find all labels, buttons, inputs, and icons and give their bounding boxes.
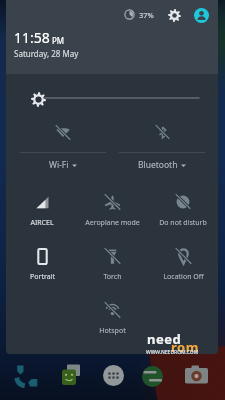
button[interactable]: Location Off [148, 245, 218, 291]
staticText: Bluetooth [138, 159, 178, 171]
staticText: WWW.NEEDROM.COM [146, 349, 199, 356]
staticText: Saturday, 28 May [14, 48, 79, 59]
button[interactable]: Portrait [7, 245, 77, 291]
button[interactable]: Camera [183, 362, 209, 388]
staticText: Aeroplane mode [85, 218, 140, 228]
staticText: need [147, 330, 182, 348]
button[interactable]: AIRCEL [7, 191, 77, 237]
button[interactable]: Brightness [30, 91, 46, 107]
staticText: Hotspot [99, 326, 126, 336]
button[interactable]: Torch [77, 245, 147, 291]
staticText: 11:58 [14, 28, 50, 47]
button[interactable]: Apps [100, 362, 126, 388]
staticText: Do not disturb [159, 218, 207, 228]
button[interactable]: User profile [192, 6, 210, 24]
button[interactable]: Phone [13, 363, 39, 389]
staticText: Location Off [163, 272, 204, 282]
staticText: Portrait [30, 272, 55, 282]
button[interactable]: Hotspot [77, 299, 147, 345]
staticText: Wi-Fi [49, 159, 69, 171]
button[interactable]: Messages [58, 362, 84, 388]
staticText: 37% [139, 10, 154, 20]
button[interactable]: Browser [139, 363, 165, 389]
staticText: PM [52, 35, 65, 46]
button[interactable]: Wi-Fi [20, 118, 106, 174]
button[interactable]: Settings [165, 6, 183, 24]
button[interactable]: Aeroplane mode [77, 191, 147, 237]
button[interactable]: Bluetooth [119, 118, 205, 174]
staticText: rom [171, 338, 199, 356]
staticText: Torch [103, 272, 122, 282]
button[interactable]: Do not disturb [148, 191, 218, 237]
staticText: AIRCEL [30, 218, 54, 228]
